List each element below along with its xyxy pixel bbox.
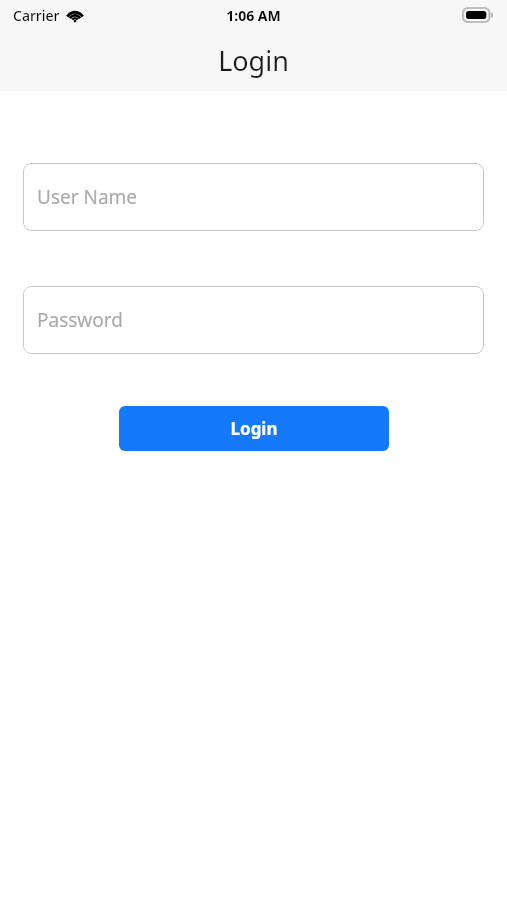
staticText: User Name	[37, 184, 138, 210]
other: Battery full	[463, 8, 493, 22]
staticText: Carrier	[13, 6, 60, 25]
staticText: Login	[218, 42, 289, 79]
button[interactable]: Password	[23, 286, 484, 354]
other: Wi-Fi signal	[66, 9, 84, 22]
button[interactable]: User Name	[23, 163, 484, 231]
staticText: Password	[37, 307, 123, 333]
staticText: 1:06 AM	[226, 6, 281, 25]
button[interactable]: Login	[119, 406, 389, 451]
staticText: Login	[230, 417, 278, 440]
